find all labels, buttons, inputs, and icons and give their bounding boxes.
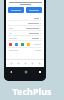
button[interactable]: Mail: [9, 43, 12, 46]
button[interactable]: [6, 35, 44, 40]
button[interactable]: Add: [22, 60, 28, 66]
button[interactable]: Alerts: [29, 60, 35, 66]
button[interactable]: Photos: [27, 43, 30, 46]
button[interactable]: [6, 16, 44, 20]
button[interactable]: Docs: [21, 43, 24, 46]
button[interactable]: [6, 30, 44, 35]
button[interactable]: [6, 20, 44, 25]
button[interactable]: Recents: [37, 69, 42, 74]
staticText: TechPlus: [12, 85, 52, 97]
button[interactable]: Search: [15, 60, 21, 66]
button[interactable]: [8, 7, 24, 13]
button[interactable]: [26, 7, 42, 13]
button[interactable]: Back: [8, 69, 13, 74]
button[interactable]: Profile: [36, 60, 42, 66]
button[interactable]: Home: [8, 60, 14, 66]
button[interactable]: Drive: [15, 43, 18, 46]
button[interactable]: [6, 25, 44, 30]
button[interactable]: Home: [23, 69, 28, 74]
